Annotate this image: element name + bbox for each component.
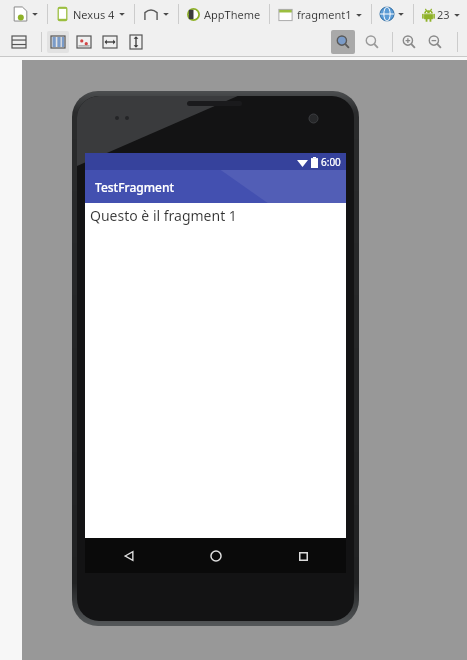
- button[interactable]: Orientation: [140, 7, 173, 21]
- staticText: 23: [437, 7, 450, 22]
- button[interactable]: TestFragment: [85, 170, 346, 203]
- staticText: TestFragment: [95, 179, 175, 195]
- staticText: 6:00: [321, 155, 341, 169]
- button[interactable]: Nexus 4: [53, 6, 129, 22]
- button[interactable]: fragment1: [275, 7, 366, 22]
- staticText: Questo è il fragment 1: [90, 206, 237, 225]
- button[interactable]: Back: [112, 539, 146, 573]
- button[interactable]: 23: [419, 7, 464, 22]
- button[interactable]: Errors: [73, 31, 95, 53]
- button[interactable]: Recent apps: [286, 539, 320, 573]
- staticText: fragment1: [297, 7, 352, 22]
- staticText: AppTheme: [204, 7, 261, 22]
- button[interactable]: Locale: [377, 7, 408, 21]
- button[interactable]: Zoom out: [424, 31, 446, 53]
- button[interactable]: Rows: [8, 31, 30, 53]
- button[interactable]: Fit height: [125, 31, 147, 53]
- button[interactable]: AppTheme: [184, 7, 264, 22]
- button[interactable]: Zoom to fit: [331, 30, 355, 54]
- button[interactable]: Columns: [47, 31, 69, 53]
- button[interactable]: Zoom 100%: [361, 31, 383, 53]
- button[interactable]: Fit width: [99, 31, 121, 53]
- staticText: Nexus 4: [73, 7, 115, 22]
- button[interactable]: Layout variants: [10, 6, 42, 22]
- button[interactable]: Home: [199, 539, 233, 573]
- button[interactable]: Zoom in: [398, 31, 420, 53]
